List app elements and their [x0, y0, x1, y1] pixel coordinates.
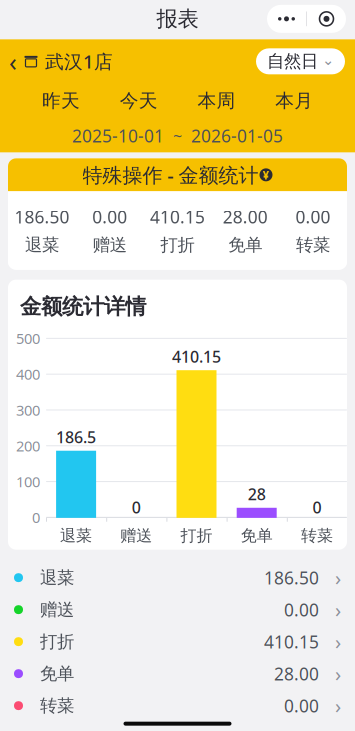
staticText: 28.00: [274, 662, 319, 685]
staticText: 赠送: [93, 234, 127, 256]
staticText: 特殊操作 - 金额统计: [82, 162, 258, 188]
staticText: ›: [335, 628, 341, 655]
button[interactable]: Back, 武汉1店: [0, 38, 113, 84]
staticText: 186.5: [56, 426, 96, 448]
button[interactable]: 自然日: [256, 48, 345, 74]
staticText: ›: [335, 564, 341, 591]
staticText: 0: [312, 497, 321, 518]
staticText: 金额统计详情: [20, 294, 146, 320]
staticText: ¥: [262, 167, 269, 183]
staticText: 28: [248, 483, 266, 505]
button[interactable]: 0.00: [279, 191, 347, 270]
staticText: 410.15: [264, 630, 319, 653]
button[interactable]: Close mini program: [307, 5, 346, 33]
staticText: ~: [173, 125, 182, 146]
button[interactable]: More: [267, 5, 306, 33]
staticText: 186.50: [14, 205, 69, 228]
button[interactable]: 28.00: [211, 191, 279, 270]
staticText: 赠送: [120, 526, 152, 546]
staticText: 300: [16, 400, 40, 420]
staticText: 400: [16, 364, 40, 384]
staticText: 500: [16, 329, 40, 348]
staticText: 0.00: [284, 694, 319, 717]
staticText: 0.00: [92, 205, 127, 228]
button[interactable]: 0.00: [76, 191, 144, 270]
staticText: 转菜: [40, 695, 74, 716]
staticText: 免单: [228, 234, 262, 256]
staticText: 打折: [40, 631, 74, 652]
staticText: 本月: [275, 89, 313, 112]
staticText: 转菜: [301, 526, 333, 546]
staticText: ⌄: [322, 51, 334, 68]
staticText: 0.00: [296, 205, 331, 228]
staticText: 转菜: [296, 234, 330, 256]
staticText: 打折: [160, 234, 194, 256]
button[interactable]: 186.50: [8, 191, 76, 270]
staticText: 打折: [180, 526, 212, 546]
staticText: 昨天: [42, 89, 80, 112]
staticText: 0: [32, 508, 40, 527]
staticText: ›: [335, 692, 341, 719]
staticText: 2025-10-01: [72, 124, 164, 147]
staticText: ‹: [9, 44, 17, 78]
staticText: 100: [16, 472, 40, 491]
staticText: 410.15: [172, 346, 221, 367]
staticText: 赠送: [40, 599, 74, 620]
button[interactable]: 打折: [0, 626, 355, 658]
button[interactable]: 今天: [100, 84, 178, 117]
staticText: 武汉1店: [45, 49, 113, 74]
button[interactable]: 退菜: [0, 562, 355, 594]
button[interactable]: 本月: [255, 84, 333, 117]
staticText: 28.00: [223, 205, 268, 228]
staticText: 0.00: [284, 598, 319, 621]
staticText: 自然日: [267, 51, 318, 72]
button[interactable]: 赠送: [0, 594, 355, 626]
button[interactable]: 免单: [0, 658, 355, 690]
button[interactable]: 转菜: [0, 690, 355, 722]
staticText: 本周: [197, 89, 235, 112]
staticText: 退菜: [40, 567, 74, 588]
staticText: 0: [132, 497, 141, 518]
staticText: 今天: [120, 89, 158, 112]
staticText: 186.50: [264, 566, 319, 589]
button[interactable]: 昨天: [22, 84, 100, 117]
button[interactable]: 本周: [177, 84, 255, 117]
staticText: 报表: [156, 6, 198, 32]
button[interactable]: 410.15: [144, 191, 211, 270]
staticText: 200: [16, 436, 40, 455]
staticText: 退菜: [60, 526, 92, 546]
staticText: 退菜: [25, 234, 59, 256]
staticText: 410.15: [150, 205, 205, 228]
staticText: ›: [335, 660, 341, 687]
staticText: 免单: [40, 663, 74, 684]
staticText: 2026-01-05: [191, 124, 283, 147]
staticText: 免单: [241, 526, 273, 546]
staticText: ›: [335, 596, 341, 623]
